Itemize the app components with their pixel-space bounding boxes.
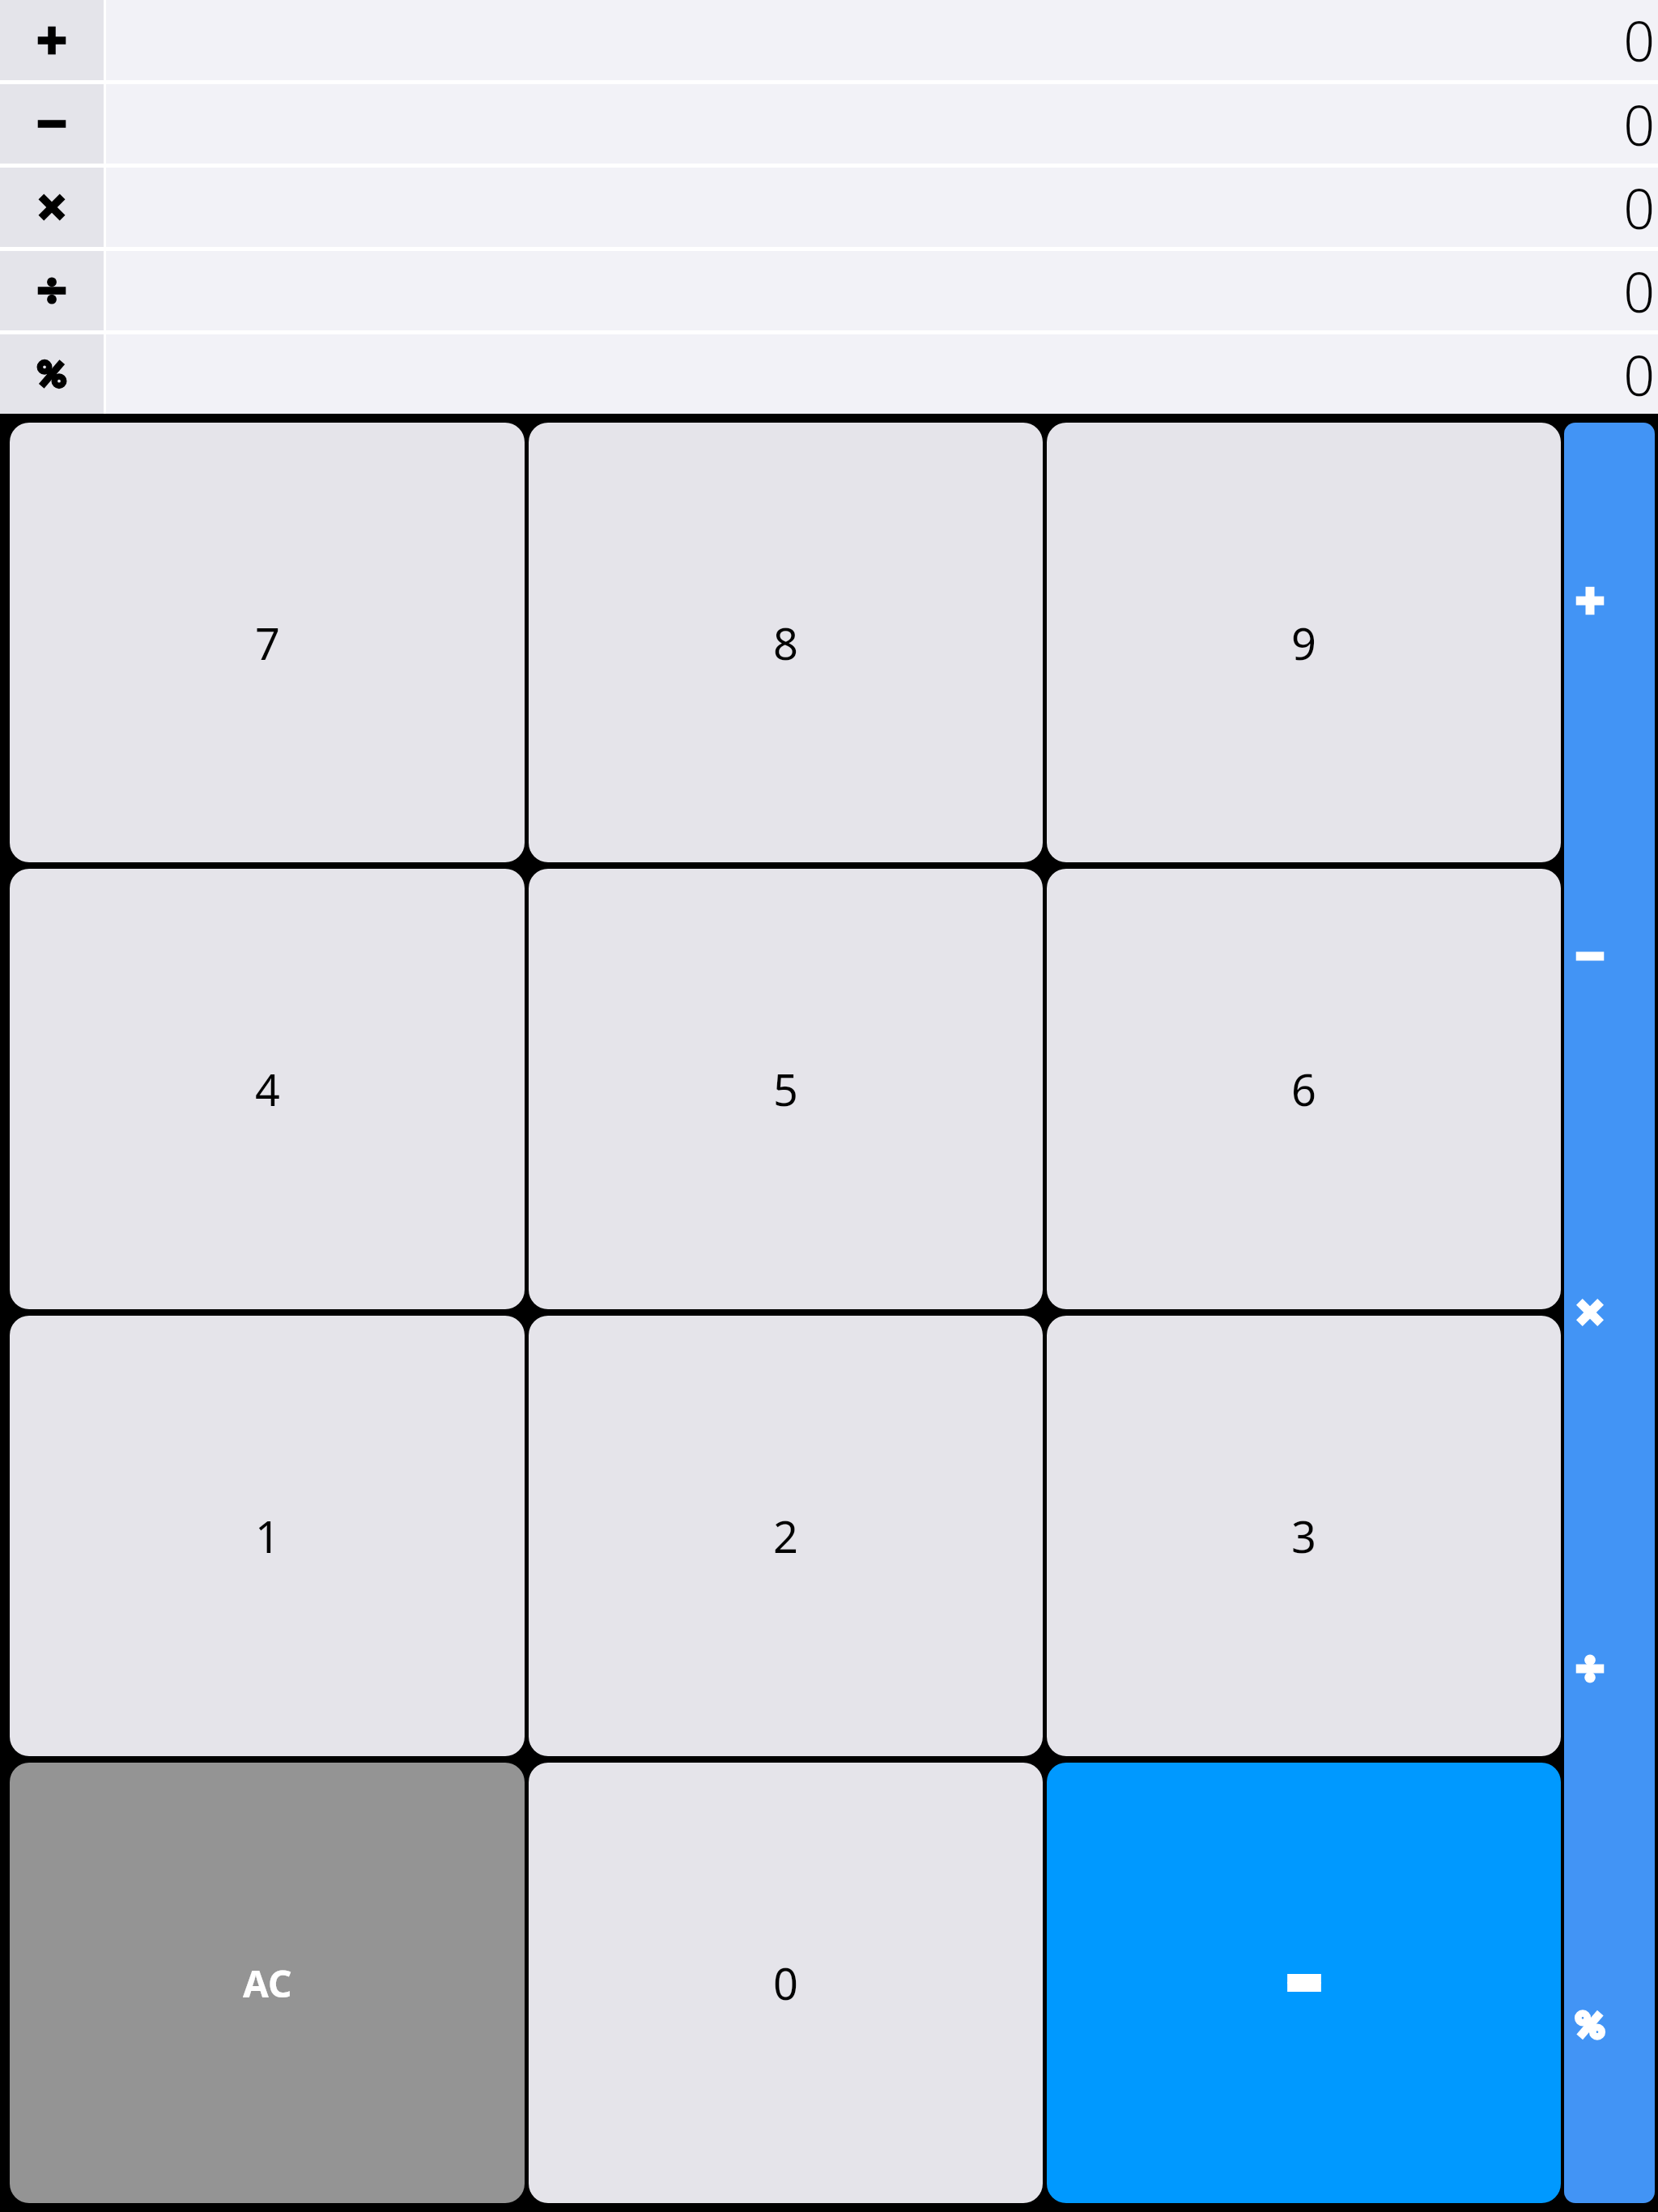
button[interactable]: 1 <box>10 1316 525 1756</box>
button[interactable]: Percent <box>1564 1847 1655 2203</box>
staticText: 0 <box>773 1953 798 2013</box>
staticText: 5 <box>773 1059 798 1119</box>
button[interactable]: 0 <box>106 0 1658 80</box>
button[interactable]: 6 <box>1047 869 1561 1309</box>
staticText: 9 <box>1291 613 1316 673</box>
staticText: 3 <box>1291 1506 1316 1566</box>
button[interactable]: 9 <box>1047 423 1561 862</box>
button[interactable]: 8 <box>529 423 1043 862</box>
staticText: 0 <box>1623 253 1655 329</box>
staticText: AC <box>243 1958 292 2009</box>
button[interactable]: 3 <box>1047 1316 1561 1756</box>
button[interactable]: Plus <box>0 0 104 80</box>
button[interactable]: Multiply <box>1564 1134 1655 1491</box>
button[interactable]: 0 <box>106 168 1658 247</box>
button[interactable]: Minus <box>0 84 104 164</box>
staticText: 0 <box>1623 170 1655 245</box>
staticText: 7 <box>255 613 280 673</box>
staticText: 4 <box>255 1059 280 1119</box>
button[interactable]: 0 <box>106 334 1658 414</box>
staticText: 0 <box>1623 337 1655 412</box>
staticText: 0 <box>1623 2 1655 78</box>
button[interactable]: Divide <box>0 251 104 330</box>
button[interactable]: 2 <box>529 1316 1043 1756</box>
button[interactable]: 5 <box>529 869 1043 1309</box>
staticText: 1 <box>255 1506 280 1566</box>
button[interactable]: 0 <box>529 1763 1043 2203</box>
button[interactable]: Divide <box>1564 1491 1655 1847</box>
staticText: 6 <box>1291 1059 1316 1119</box>
button[interactable]: 7 <box>10 423 525 862</box>
button[interactable]: 0 <box>106 84 1658 164</box>
button[interactable]: Equals <box>1047 1763 1561 2203</box>
button[interactable]: Multiply <box>0 168 104 247</box>
button[interactable]: 4 <box>10 869 525 1309</box>
button[interactable]: Percent <box>0 334 104 414</box>
button[interactable]: Minus <box>1564 778 1655 1134</box>
button[interactable]: Plus <box>1564 423 1655 778</box>
button[interactable]: 0 <box>106 251 1658 330</box>
button[interactable]: AC <box>10 1763 525 2203</box>
staticText: 2 <box>773 1506 798 1566</box>
staticText: 8 <box>773 613 798 673</box>
staticText: 0 <box>1623 87 1655 162</box>
